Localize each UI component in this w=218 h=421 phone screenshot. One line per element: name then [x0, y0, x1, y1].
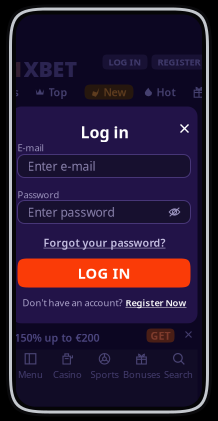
staticText: LOG IN — [77, 263, 130, 283]
staticText: 1 — [10, 54, 23, 83]
staticText: Register Now — [125, 296, 186, 309]
staticText: Casino — [53, 368, 82, 381]
button[interactable]: Menu — [12, 353, 49, 379]
button[interactable]: Dismiss promotion — [185, 331, 191, 337]
button[interactable]: Sports — [86, 353, 123, 379]
staticText: Menu — [18, 368, 43, 381]
staticText: Bonuses — [123, 368, 160, 381]
button[interactable]: REGISTER — [151, 54, 206, 69]
button[interactable]: Bonuses — [123, 353, 160, 379]
button[interactable]: LOG IN — [17, 258, 190, 287]
staticText: Sports — [90, 368, 118, 381]
staticText: Don't have an account? — [22, 296, 122, 309]
staticText: GET — [150, 328, 170, 343]
button[interactable]: Register Now — [125, 296, 186, 309]
staticText: REGISTER — [157, 56, 200, 68]
button[interactable]: LOG IN — [102, 54, 147, 69]
button[interactable]: Hot — [144, 85, 175, 98]
staticText: LOG IN — [108, 56, 141, 68]
staticText: Search — [164, 368, 193, 381]
button[interactable]: Close — [176, 120, 192, 136]
staticText: E-mail — [17, 141, 43, 154]
staticText: Top — [48, 85, 67, 99]
staticText: Password — [17, 188, 59, 201]
staticText: Hot — [156, 85, 175, 99]
staticText: Enter password — [27, 204, 114, 220]
button[interactable]: Top — [35, 85, 67, 98]
button[interactable]: Casino — [49, 353, 86, 379]
staticText: XBET — [23, 54, 77, 83]
button[interactable]: Show password — [168, 206, 180, 217]
button[interactable]: Search — [160, 353, 197, 379]
button[interactable]: New — [84, 84, 133, 99]
button[interactable]: Forgot your password? — [43, 235, 165, 250]
staticText: New — [103, 85, 126, 99]
staticText: 150% up to €200 — [14, 330, 99, 345]
staticText: Log in — [80, 121, 128, 143]
staticText: s — [13, 85, 18, 99]
staticText: Enter e-mail — [27, 158, 95, 174]
button[interactable]: GET — [146, 328, 174, 342]
staticText: Forgot your password? — [43, 235, 165, 250]
